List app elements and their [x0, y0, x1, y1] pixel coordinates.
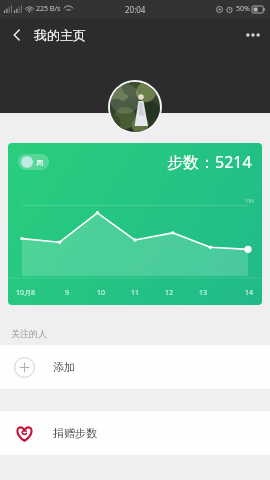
button[interactable]: Profile photo: [110, 82, 160, 132]
staticText: 10: [97, 288, 106, 298]
staticText: 225 B/s: [36, 4, 61, 14]
staticText: 1W: [245, 197, 255, 205]
button[interactable]: 周: [8, 143, 262, 305]
staticText: 添加: [53, 360, 75, 374]
staticText: 50%: [236, 4, 250, 14]
button[interactable]: Donate steps: [0, 411, 270, 455]
staticText: 14: [245, 288, 254, 298]
staticText: 20:04: [125, 4, 146, 15]
staticText: 步数：5214: [167, 151, 252, 173]
staticText: 12: [165, 288, 174, 298]
staticText: 关注的人: [11, 328, 47, 339]
staticText: 周: [36, 158, 43, 167]
staticText: 9: [65, 288, 70, 298]
staticText: 13: [199, 288, 208, 298]
staticText: 10月8: [16, 288, 36, 298]
staticText: 11: [131, 288, 140, 298]
button[interactable]: Back: [0, 18, 34, 52]
staticText: 我的主页: [34, 27, 86, 43]
button[interactable]: Add person: [0, 345, 270, 389]
button[interactable]: 周: [18, 154, 49, 170]
staticText: 捐赠步数: [53, 426, 97, 440]
button[interactable]: More options: [236, 18, 270, 52]
